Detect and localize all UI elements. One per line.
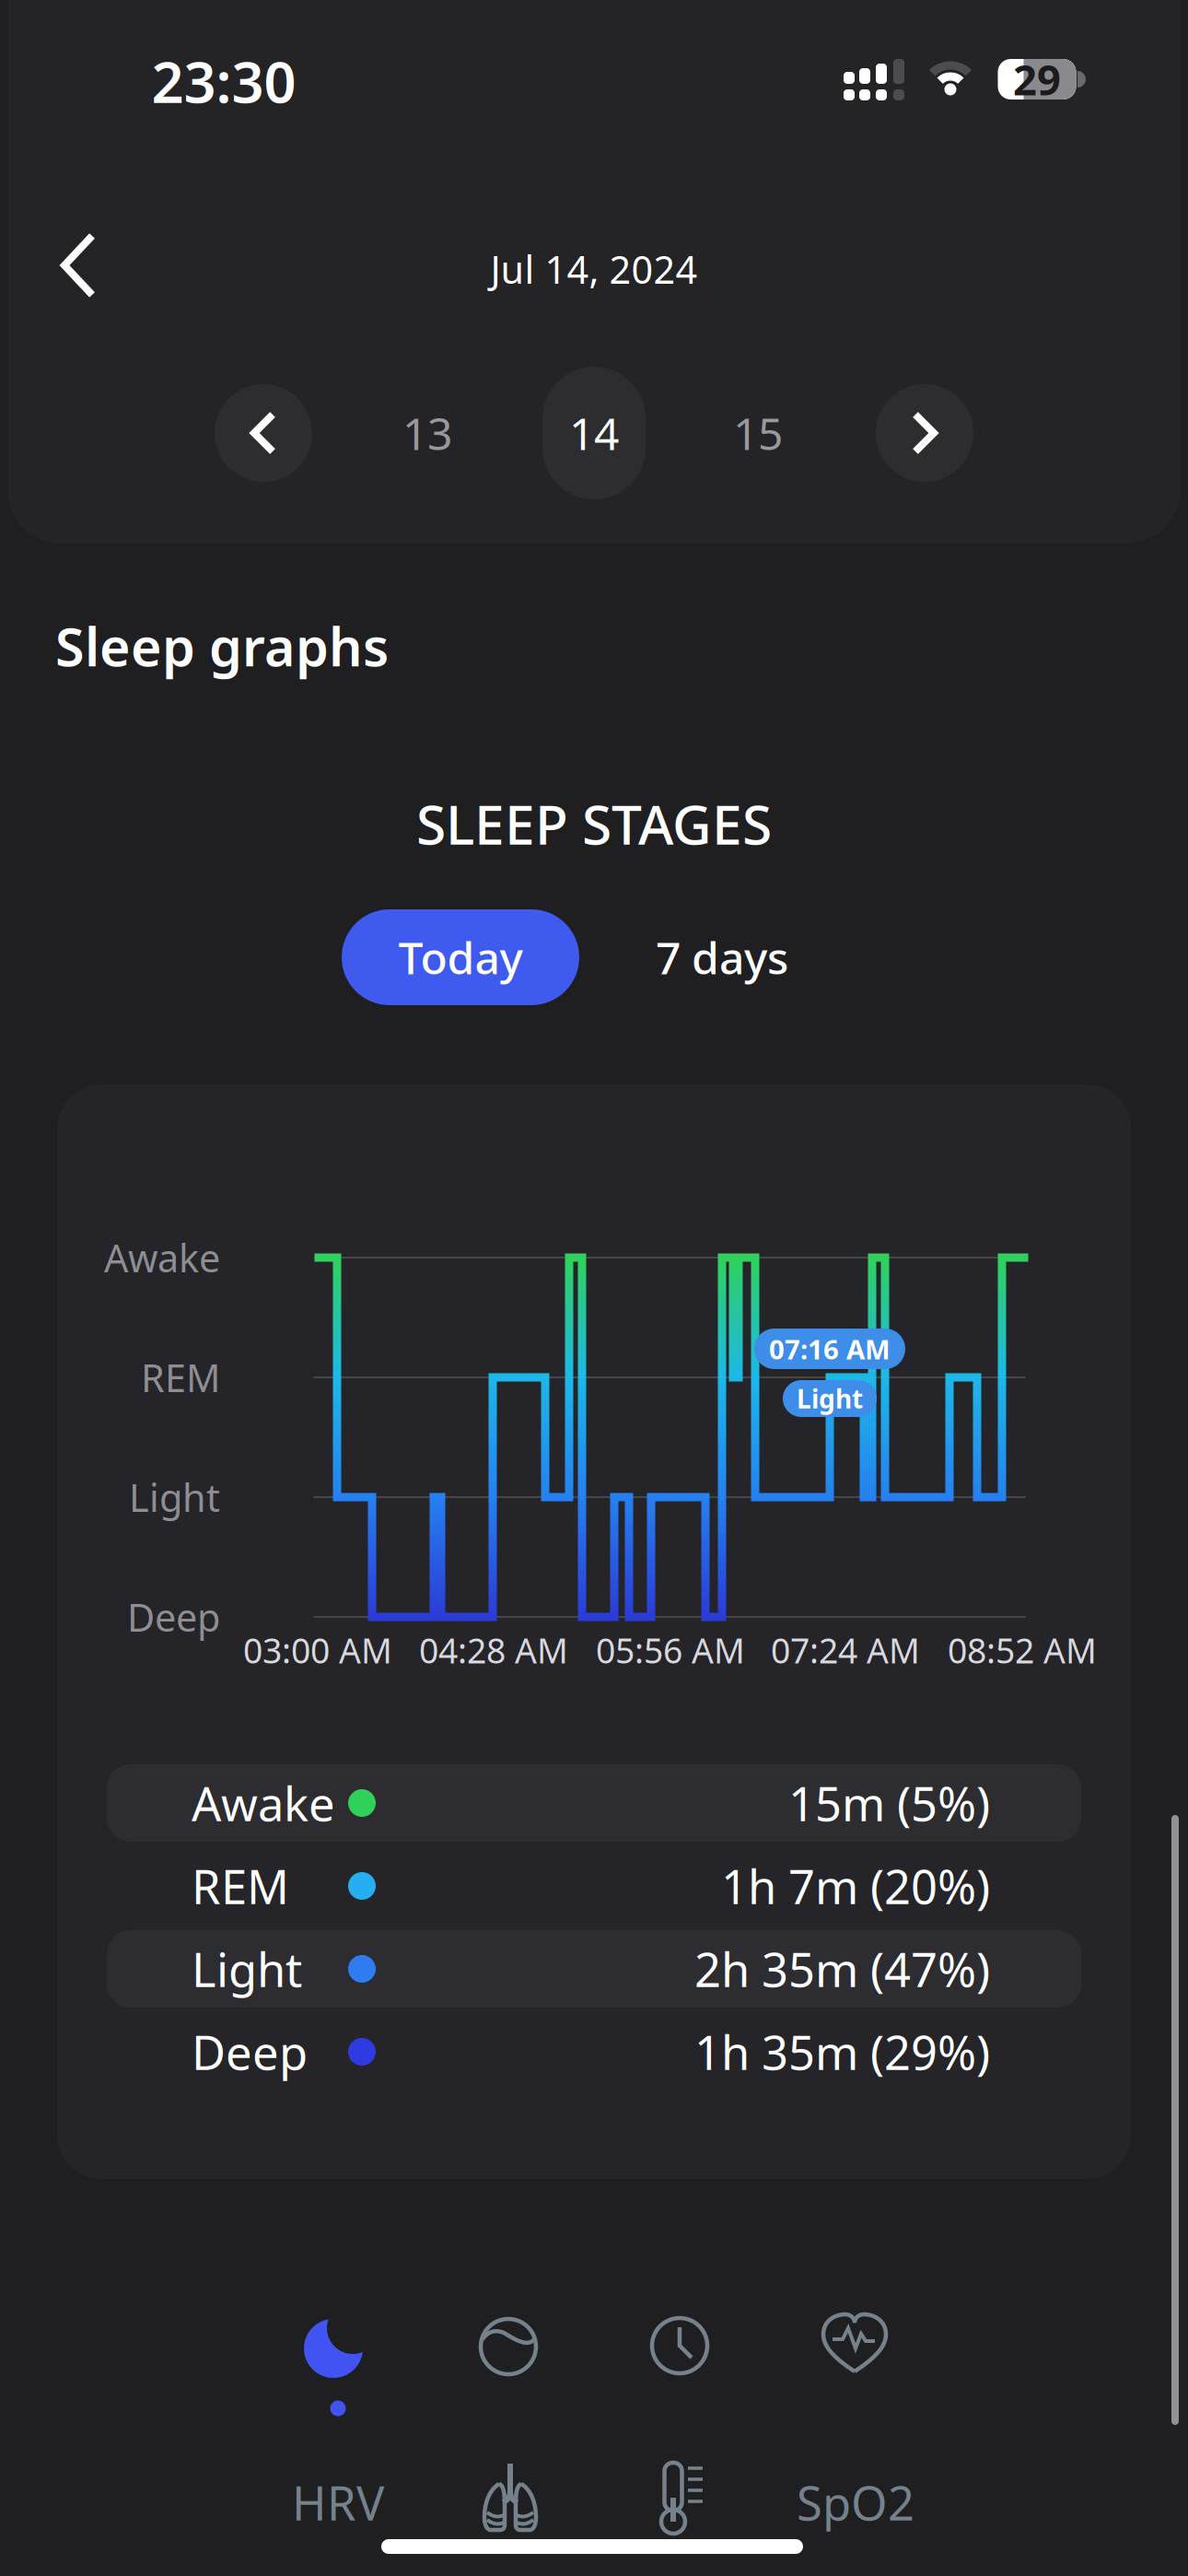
- button[interactable]: Temperature: [647, 2457, 712, 2540]
- button[interactable]: Breathing rate: [473, 2460, 547, 2537]
- button[interactable]: Back: [57, 230, 99, 300]
- staticText: 14: [569, 404, 619, 462]
- button[interactable]: Sleep: [295, 2304, 378, 2387]
- staticText: Deep: [127, 1592, 220, 1642]
- staticText: 13: [402, 404, 452, 462]
- staticText: SLEEP STAGES: [416, 788, 772, 859]
- button[interactable]: 13: [377, 369, 478, 498]
- staticText: SpO2: [797, 2471, 914, 2533]
- staticText: REM: [192, 1855, 289, 1917]
- button[interactable]: Sleep quality: [472, 2310, 545, 2383]
- staticText: 07:16 AM: [769, 1331, 891, 1367]
- staticText: Awake: [192, 1772, 335, 1834]
- staticText: Awake: [104, 1232, 220, 1283]
- staticText: 15: [733, 404, 783, 462]
- staticText: Light: [129, 1472, 220, 1522]
- staticText: HRV: [292, 2471, 384, 2533]
- staticText: 07:24 AM: [771, 1627, 920, 1673]
- staticText: 15m (5%): [788, 1772, 990, 1834]
- staticText: Light: [192, 1938, 302, 2000]
- button[interactable]: 7 days: [611, 909, 833, 1005]
- button[interactable]: 15: [707, 369, 809, 498]
- staticText: Sleep graphs: [55, 611, 389, 681]
- button[interactable]: HRV: [264, 2465, 412, 2539]
- button[interactable]: 14: [542, 367, 646, 499]
- staticText: Today: [398, 928, 523, 987]
- staticText: 05:56 AM: [596, 1627, 745, 1673]
- staticText: 29: [1013, 52, 1061, 107]
- staticText: 04:28 AM: [419, 1627, 568, 1673]
- button[interactable]: Today: [342, 909, 579, 1005]
- staticText: 1h 35m (29%): [694, 2021, 990, 2083]
- staticText: REM: [141, 1352, 220, 1403]
- button[interactable]: Next day: [876, 384, 973, 482]
- staticText: 1h 7m (20%): [721, 1855, 990, 1917]
- staticText: 08:52 AM: [948, 1627, 1097, 1673]
- staticText: Deep: [192, 2021, 308, 2083]
- button[interactable]: Previous day: [215, 384, 312, 482]
- staticText: 23:30: [151, 44, 296, 119]
- staticText: Light: [797, 1381, 863, 1416]
- staticText: 03:00 AM: [243, 1627, 392, 1673]
- staticText: 7 days: [656, 928, 788, 987]
- button[interactable]: SpO2: [777, 2465, 934, 2539]
- staticText: 2h 35m (47%): [694, 1938, 990, 2000]
- button[interactable]: Time asleep: [643, 2309, 716, 2383]
- button[interactable]: Heart rate: [818, 2306, 891, 2380]
- staticText: Jul 14, 2024: [490, 244, 698, 294]
